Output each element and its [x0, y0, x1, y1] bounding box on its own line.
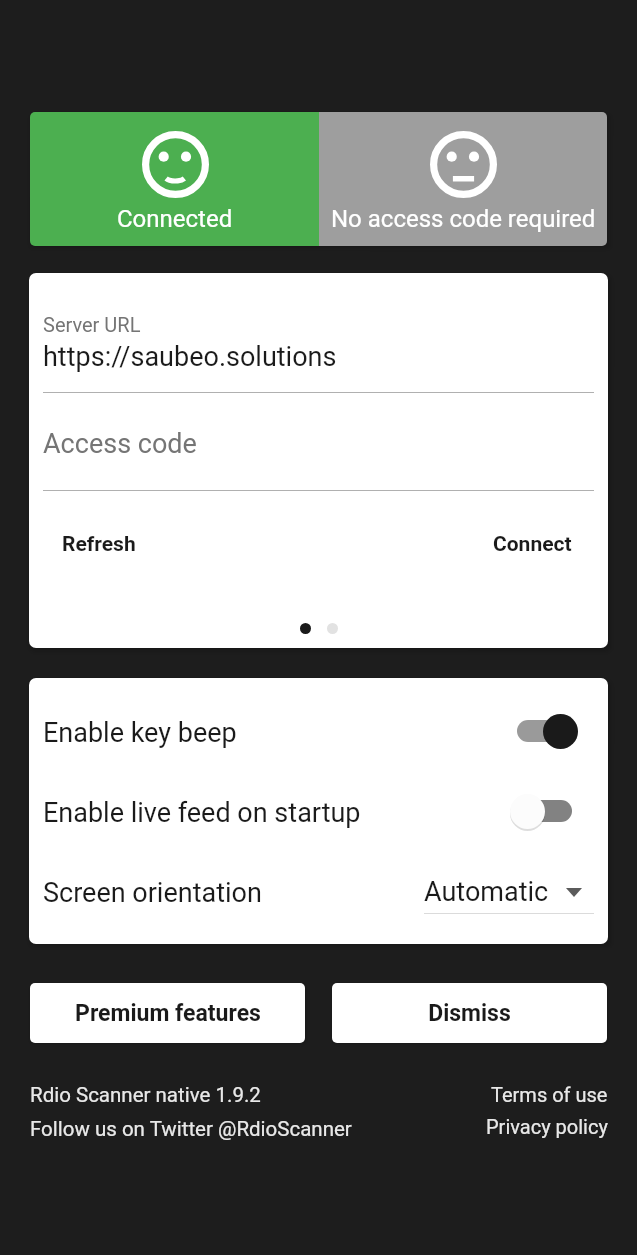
- button[interactable]: Connect: [485, 526, 580, 563]
- button[interactable]: Privacy policy: [486, 1115, 608, 1138]
- button[interactable]: Automatic: [424, 851, 594, 931]
- staticText: Connected: [117, 205, 233, 233]
- staticText: Enable key beep: [43, 717, 237, 749]
- staticText: Connect: [493, 532, 572, 557]
- button[interactable]: Toggle on: [510, 711, 579, 751]
- staticText: Enable live feed on startup: [43, 797, 361, 829]
- button[interactable]: Refresh: [54, 526, 144, 563]
- staticText: https://saubeo.solutions: [43, 341, 337, 373]
- button[interactable]: Toggle off: [510, 791, 579, 831]
- staticText: Dismiss: [428, 1000, 511, 1027]
- button[interactable]: Terms of use: [491, 1083, 608, 1106]
- button[interactable]: Enable live feed on startup: [29, 771, 608, 851]
- button[interactable]: Enable key beep: [29, 691, 608, 771]
- button[interactable]: No access code required: [319, 112, 607, 246]
- staticText: Access code: [43, 428, 197, 460]
- staticText: Server URL: [43, 313, 141, 336]
- staticText: No access code required: [331, 205, 596, 233]
- button[interactable]: Connected: [30, 112, 319, 246]
- staticText: Premium features: [75, 1000, 261, 1027]
- button[interactable]: Screen orientation: [29, 851, 608, 931]
- staticText: Screen orientation: [43, 877, 262, 909]
- button[interactable]: Dismiss: [332, 983, 607, 1043]
- staticText: Refresh: [62, 532, 136, 557]
- staticText: Rdio Scanner native 1.9.2: [30, 1083, 261, 1107]
- staticText: Follow us on Twitter @RdioScanner: [30, 1117, 352, 1141]
- staticText: Automatic: [424, 876, 549, 908]
- button[interactable]: Premium features: [30, 983, 305, 1043]
